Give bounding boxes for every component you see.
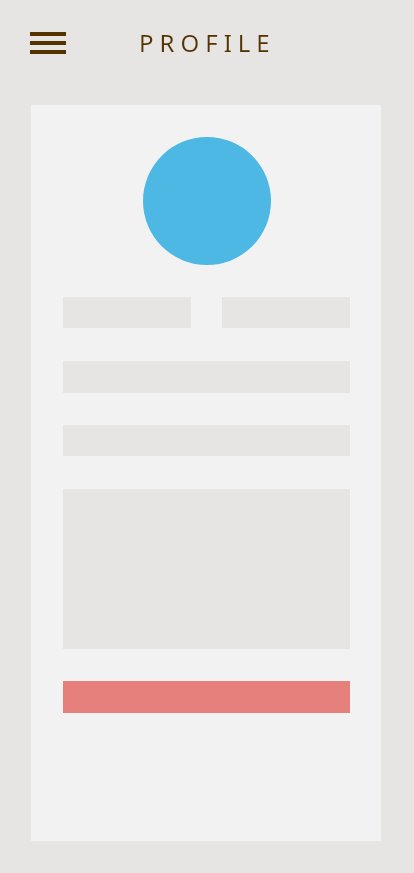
button[interactable]: Open navigation menu <box>30 32 66 55</box>
button[interactable]: Profile photo <box>143 137 271 265</box>
staticText: PROFILE <box>139 26 276 59</box>
